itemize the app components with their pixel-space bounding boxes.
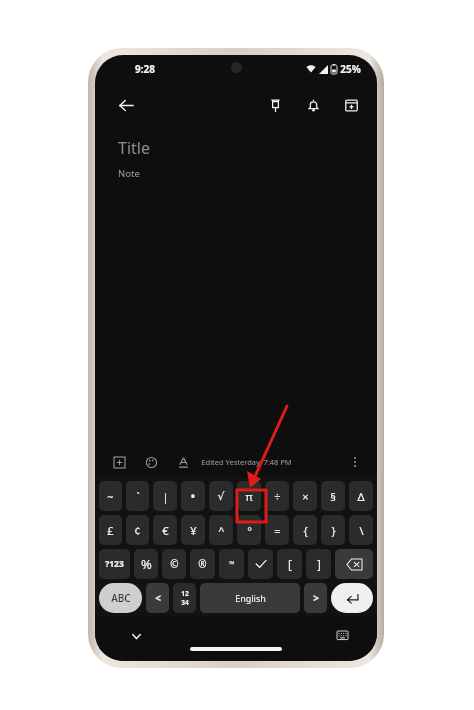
staticText: % bbox=[141, 555, 152, 573]
staticText: Δ bbox=[357, 489, 365, 504]
button[interactable]: } bbox=[321, 515, 345, 545]
button[interactable]: More options bbox=[343, 450, 367, 474]
button[interactable]: ABC bbox=[99, 583, 142, 613]
button[interactable] bbox=[331, 583, 373, 613]
staticText: ° bbox=[247, 523, 252, 538]
button[interactable]: ¥ bbox=[181, 515, 205, 545]
staticText: √ bbox=[217, 490, 225, 503]
button[interactable]: € bbox=[153, 515, 177, 545]
button[interactable]: \ bbox=[349, 515, 373, 545]
button[interactable] bbox=[335, 549, 373, 579]
staticText: 12 bbox=[181, 589, 189, 598]
button[interactable]: | bbox=[153, 481, 177, 511]
button[interactable]: ^ bbox=[209, 515, 233, 545]
button[interactable]: < bbox=[146, 583, 169, 613]
staticText: 9:28 bbox=[135, 62, 155, 76]
button[interactable]: Palette bbox=[139, 450, 163, 474]
button[interactable]: ?123 bbox=[99, 549, 130, 579]
button[interactable]: % bbox=[134, 549, 158, 579]
button[interactable]: 12 bbox=[173, 583, 196, 613]
button[interactable]: Switch keyboard bbox=[331, 625, 353, 647]
button[interactable]: ™ bbox=[219, 549, 244, 579]
button[interactable]: Δ bbox=[349, 481, 373, 511]
button[interactable]: { bbox=[293, 515, 317, 545]
button[interactable]: Back bbox=[109, 88, 143, 122]
staticText: ¢ bbox=[134, 523, 141, 538]
staticText: Note bbox=[118, 167, 140, 180]
staticText: ÷ bbox=[274, 489, 281, 504]
staticText: ™ bbox=[229, 559, 235, 569]
staticText: ?123 bbox=[105, 558, 124, 570]
button[interactable]: Pin bbox=[261, 91, 289, 119]
staticText: € bbox=[162, 523, 169, 538]
staticText: { bbox=[303, 523, 308, 538]
staticText: > bbox=[313, 591, 319, 605]
button[interactable]: ÷ bbox=[265, 481, 289, 511]
staticText: ® bbox=[198, 557, 207, 571]
staticText: • bbox=[190, 487, 196, 506]
staticText: π bbox=[245, 489, 253, 504]
button[interactable]: • bbox=[181, 481, 205, 511]
button[interactable] bbox=[248, 549, 273, 579]
staticText: ¥ bbox=[190, 523, 197, 538]
button[interactable]: Hide keyboard bbox=[125, 625, 147, 647]
button[interactable]: = bbox=[265, 515, 289, 545]
button[interactable]: ® bbox=[190, 549, 215, 579]
button[interactable]: Reminder bbox=[299, 91, 327, 119]
staticText: < bbox=[155, 591, 161, 605]
staticText: ` bbox=[136, 489, 140, 504]
staticText: } bbox=[331, 523, 336, 538]
button[interactable]: > bbox=[304, 583, 327, 613]
button[interactable]: English bbox=[200, 583, 300, 613]
button[interactable]: √ bbox=[209, 481, 233, 511]
staticText: ABC bbox=[111, 591, 131, 605]
button[interactable]: Add bbox=[107, 450, 131, 474]
staticText: £ bbox=[107, 523, 114, 538]
staticText: × bbox=[302, 489, 309, 504]
button[interactable]: × bbox=[293, 481, 317, 511]
button[interactable]: ~ bbox=[99, 481, 122, 511]
button[interactable]: π bbox=[237, 481, 261, 511]
button[interactable]: ¢ bbox=[126, 515, 149, 545]
button[interactable]: Archive bbox=[337, 91, 365, 119]
button[interactable]: ` bbox=[126, 481, 149, 511]
staticText: English bbox=[235, 592, 266, 604]
button[interactable]: ] bbox=[306, 549, 331, 579]
button[interactable]: § bbox=[321, 481, 345, 511]
staticText: § bbox=[330, 489, 336, 504]
staticText: | bbox=[162, 489, 169, 504]
button[interactable]: © bbox=[162, 549, 186, 579]
button[interactable]: £ bbox=[99, 515, 122, 545]
staticText: ^ bbox=[218, 523, 225, 538]
staticText: \ bbox=[359, 523, 364, 538]
staticText: © bbox=[170, 557, 179, 571]
staticText: ] bbox=[317, 556, 321, 572]
button[interactable]: [ bbox=[277, 549, 302, 579]
button[interactable]: ° bbox=[237, 515, 261, 545]
staticText: Title bbox=[118, 137, 150, 159]
staticText: 25% bbox=[340, 62, 361, 76]
staticText: = bbox=[274, 523, 281, 538]
staticText: 34 bbox=[181, 598, 189, 607]
button[interactable]: Format text bbox=[171, 450, 195, 474]
staticText: [ bbox=[288, 556, 292, 572]
staticText: ~ bbox=[107, 489, 114, 504]
staticText: Edited Yesterday, 7:48 PM bbox=[201, 457, 292, 467]
